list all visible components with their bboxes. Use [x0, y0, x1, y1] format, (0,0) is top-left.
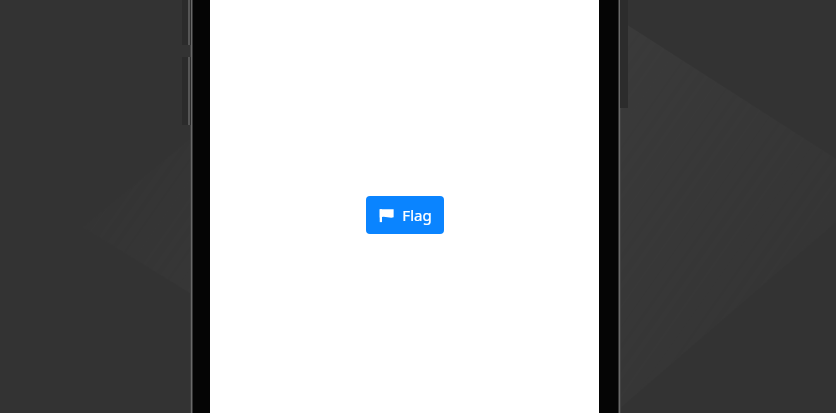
staticText: Flag: [402, 205, 432, 225]
other: Volume buttons: [182, 57, 191, 125]
button[interactable]: Flag: [366, 196, 444, 234]
other: Power button: [182, 0, 191, 45]
